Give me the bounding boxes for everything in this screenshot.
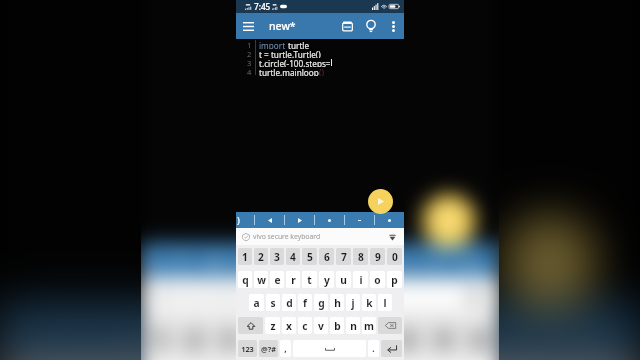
staticText: ) [143,247,149,275]
staticText: import [259,40,288,49]
button[interactable]: x [282,317,296,334]
button[interactable]: , [280,340,291,357]
button[interactable]: Hints [359,14,383,38]
button[interactable]: u [336,271,351,288]
staticText: 7:45 [254,1,271,12]
button[interactable]: ) [141,243,179,277]
button[interactable]: 4 [247,320,277,356]
staticText: 9 [437,324,450,354]
button[interactable]: g [314,294,328,311]
staticText: 3 [222,324,235,354]
button[interactable] [301,302,411,360]
button[interactable]: k [362,294,376,311]
button[interactable]: Hide keyboard [386,231,398,243]
button[interactable]: o [370,271,385,288]
button[interactable]: z [265,317,280,334]
button[interactable]: e [270,271,284,288]
button[interactable] [187,302,297,360]
button[interactable]: 3 [213,320,243,356]
button[interactable] [285,212,314,228]
button[interactable]: Enter [381,340,402,357]
button[interactable] [437,243,497,277]
button[interactable]: 0 [387,248,402,265]
button[interactable]: Space [293,340,366,357]
button[interactable] [245,243,307,277]
button[interactable]: 3 [270,248,284,265]
button[interactable] [415,302,525,360]
button[interactable]: 6 [318,320,350,356]
button[interactable] [373,243,435,277]
button[interactable]: d [282,294,296,311]
button[interactable]: a [249,294,264,311]
button[interactable]: 7 [354,320,386,356]
button[interactable]: s [266,294,280,311]
button[interactable]: 2 [179,320,209,356]
button[interactable]: 2 [254,248,268,265]
button[interactable] [315,212,344,228]
staticText: r [291,273,296,287]
button[interactable]: 5 [282,320,314,356]
button[interactable] [309,243,371,277]
button[interactable]: 8 [353,248,368,265]
button[interactable] [73,302,183,360]
button[interactable] [529,302,635,360]
button[interactable]: ) [236,212,254,228]
button[interactable]: p [387,271,402,288]
button[interactable]: 6 [319,248,334,265]
button[interactable]: 1 [145,320,175,356]
button[interactable]: Hide keyboard [461,284,486,309]
staticText: i [359,273,363,287]
staticText: turtle [288,40,310,49]
button[interactable]: i [353,271,368,288]
button[interactable]: f [298,294,312,311]
button[interactable]: Backspace [378,317,402,334]
staticText: u [340,273,347,287]
staticText: 0 [392,250,398,264]
button[interactable]: t [302,271,317,288]
button[interactable] [375,212,403,228]
button[interactable]: 123 [238,340,257,357]
staticText: , [284,343,287,355]
button[interactable]: Open navigation menu [236,14,260,38]
button[interactable]: r [286,271,300,288]
staticText: s [270,296,276,310]
button[interactable]: 9 [427,320,459,356]
button[interactable]: 4 [286,248,300,265]
button[interactable]: c [298,317,312,334]
button[interactable]: l [378,294,392,311]
staticText: new* [269,19,296,33]
button[interactable] [345,212,374,228]
button[interactable]: q [238,271,252,288]
button[interactable]: 0 [463,320,495,356]
button[interactable]: j [346,294,360,311]
staticText: a [253,296,260,310]
button[interactable]: h [330,294,344,311]
staticText: vivo secure keyboard [177,286,322,305]
button[interactable]: Run [368,189,393,214]
button[interactable]: 9 [370,248,385,265]
button[interactable]: @?# [259,340,278,357]
staticText: p [391,273,398,287]
button[interactable]: m [362,317,376,334]
button[interactable]: w [254,271,268,288]
button[interactable]: . [368,340,379,357]
button[interactable]: 1 [238,248,252,265]
button[interactable]: v [314,317,328,334]
button[interactable]: Open file [335,14,359,38]
button[interactable]: ) [1,302,69,360]
staticText: h [334,296,341,310]
button[interactable]: 5 [302,248,317,265]
button[interactable]: 8 [390,320,422,356]
button[interactable]: Run [422,194,476,247]
button[interactable]: 7 [336,248,351,265]
button[interactable]: y [319,271,334,288]
button[interactable]: Shift [238,317,263,334]
button[interactable]: b [330,317,344,334]
staticText: k [366,296,373,310]
button[interactable] [255,212,284,228]
button[interactable]: Run [502,214,597,309]
button[interactable]: n [346,317,360,334]
button[interactable] [181,243,243,277]
button[interactable]: More options [383,16,404,37]
staticText: t.circle(-100,steps= [259,58,331,67]
